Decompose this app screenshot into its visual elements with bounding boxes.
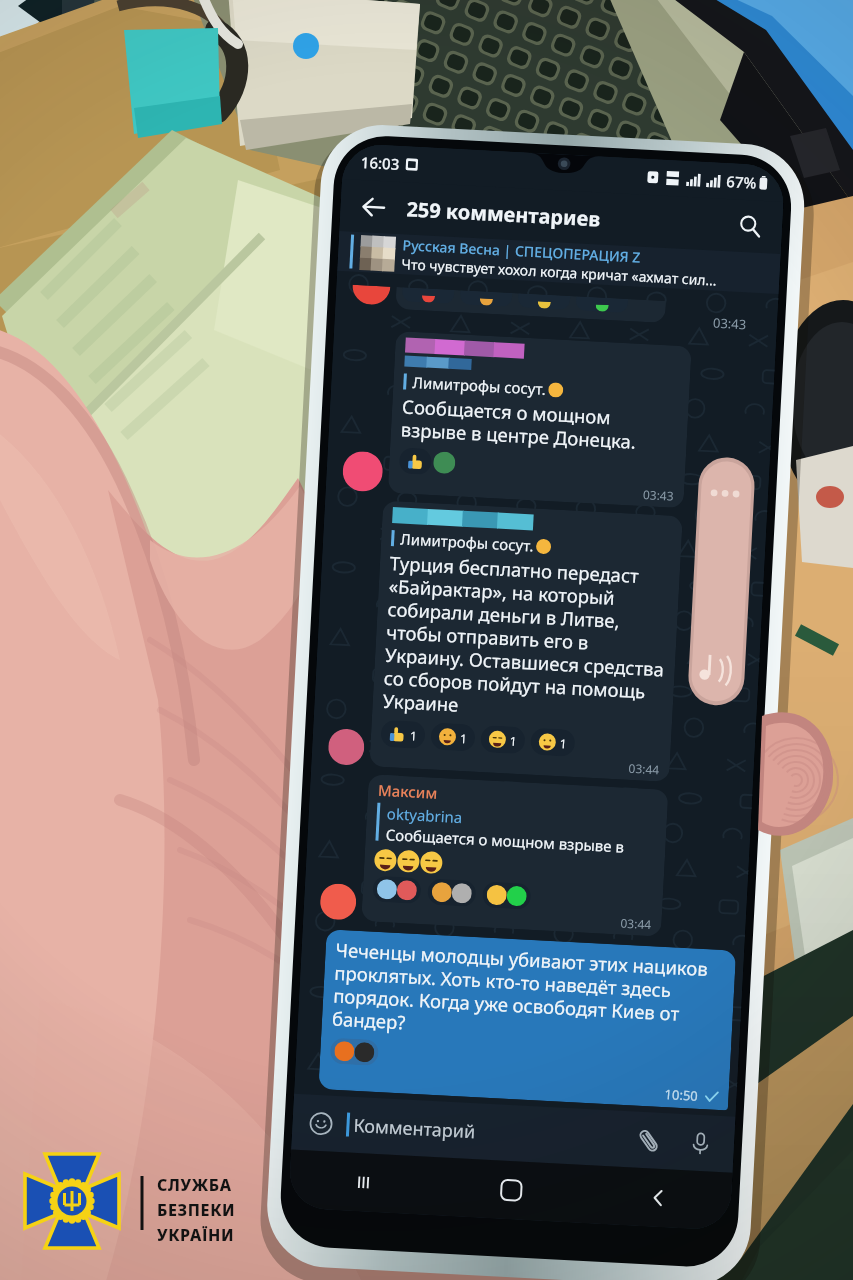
button[interactable]: 1 (430, 722, 476, 752)
button[interactable] (399, 447, 432, 475)
staticText: Чеченцы молодцы убивают этих нациков про… (331, 937, 726, 1051)
button[interactable]: Комментарий (345, 1096, 634, 1167)
button[interactable]: Back (354, 188, 391, 225)
staticText: Русская Весна | СПЕЦОПЕРАЦИЯ Z (402, 235, 642, 267)
staticText: 67% (726, 171, 757, 193)
staticText: 03:44 (620, 915, 652, 932)
staticText: УКРАЇНИ (157, 1224, 235, 1246)
button[interactable]: Recents (288, 1150, 439, 1215)
staticText: oktyabrina (386, 803, 463, 827)
button[interactable]: Open profile (319, 883, 357, 921)
staticText: Сообщается о мощном взрыве в центре… (385, 824, 656, 858)
button[interactable]: Reaction (427, 878, 476, 907)
staticText: БЕЗПЕКИ (157, 1199, 236, 1221)
staticText: Сообщается о мощном взрыве в центре Доне… (400, 393, 678, 456)
button[interactable]: 1 (380, 720, 426, 749)
staticText: 03:43 (642, 486, 674, 504)
staticText: Лимитрофы сосут. (412, 372, 547, 399)
staticText: СЛУЖБА (157, 1174, 232, 1196)
button[interactable]: Open profile (342, 450, 384, 492)
staticText: 03:43 (712, 314, 747, 333)
button[interactable]: Лимитрофы сосут. (369, 500, 683, 782)
staticText: 259 комментариев (406, 195, 601, 232)
button[interactable]: Open profile (327, 728, 365, 766)
staticText: 1 (459, 730, 467, 746)
staticText: Турция бесплатно передаст «Байрактар», н… (382, 550, 670, 727)
button[interactable]: Back (583, 1165, 732, 1231)
button[interactable]: Emoji (304, 1106, 337, 1140)
staticText: 16:03 (360, 152, 400, 174)
staticText: 10:50 (664, 1085, 699, 1105)
staticText: Максим (378, 780, 439, 803)
staticText: Лимитрофы сосут. (400, 528, 535, 555)
button[interactable]: Reaction (372, 876, 421, 904)
staticText: 03:44 (628, 760, 660, 777)
button[interactable]: Voice message (683, 1126, 717, 1160)
button[interactable]: Reaction (482, 881, 531, 910)
button[interactable]: Attach (631, 1123, 665, 1157)
staticText: 1 (410, 727, 417, 744)
button[interactable]: Home (436, 1157, 586, 1223)
button[interactable]: Чеченцы молодцы убивают этих нациков про… (318, 929, 736, 1110)
button[interactable]: Reaction (330, 1038, 379, 1066)
button[interactable]: 1 (480, 725, 526, 754)
staticText: Комментарий (353, 1113, 476, 1144)
staticText: 1 (509, 732, 517, 749)
button[interactable]: Русская Весна | СПЕЦОПЕРАЦИЯ Z (337, 231, 781, 294)
button[interactable]: Лимитрофы сосут. (388, 331, 692, 508)
button[interactable]: 1 (530, 728, 575, 757)
button[interactable]: Search (731, 207, 769, 245)
staticText: 1 (559, 735, 567, 751)
button[interactable]: Максим (361, 774, 668, 937)
staticText: Что чувствует хохол когда кричат «ахмат … (401, 254, 718, 290)
